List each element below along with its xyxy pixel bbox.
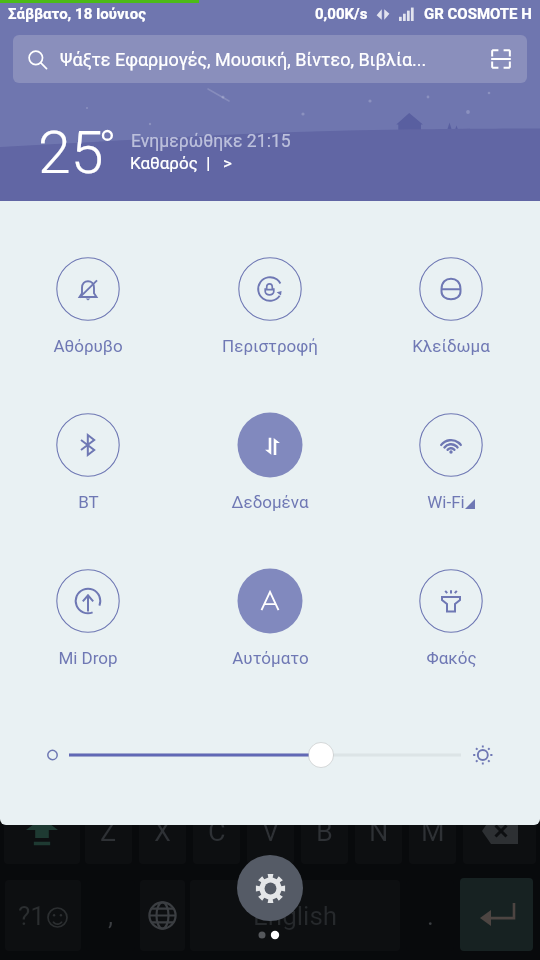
button[interactable]: Κλείδωμα bbox=[391, 252, 511, 356]
staticText: 25 bbox=[38, 118, 104, 187]
staticText: Δεδομένα bbox=[231, 492, 309, 512]
button[interactable]: Mi Drop bbox=[28, 564, 148, 668]
button[interactable]: Φακός bbox=[391, 564, 511, 668]
staticText: BT bbox=[78, 492, 99, 512]
staticText: Καθαρός | > bbox=[130, 153, 232, 173]
staticText: Περιστροφή bbox=[222, 336, 318, 356]
button[interactable] bbox=[463, 810, 536, 864]
button[interactable]: Αθόρυβο bbox=[28, 252, 148, 356]
staticText: 0,00K/s bbox=[315, 5, 368, 23]
button[interactable]: Δεδομένα bbox=[210, 408, 330, 512]
staticText: , bbox=[108, 901, 114, 931]
staticText: B bbox=[316, 816, 333, 848]
staticText: Αθόρυβο bbox=[53, 336, 123, 356]
button[interactable] bbox=[460, 878, 533, 951]
button[interactable]: V bbox=[247, 810, 294, 864]
button[interactable]: X bbox=[139, 810, 186, 864]
button[interactable]: C bbox=[193, 810, 240, 864]
button[interactable]: N bbox=[355, 810, 402, 864]
button[interactable]: Keyboard settings bbox=[237, 855, 303, 921]
button[interactable]: Περιστροφή bbox=[210, 252, 330, 356]
staticText: M bbox=[421, 816, 445, 848]
staticText: English bbox=[253, 901, 338, 931]
staticText: Ψάξτε Εφαρμογές, Μουσική, Βίντεο, Βιβλία… bbox=[60, 49, 427, 70]
button[interactable]: Brightness bbox=[0, 735, 540, 775]
button[interactable]: M bbox=[409, 810, 456, 864]
staticText: Wi-Fi bbox=[427, 492, 465, 512]
staticText: GR COSMOTE H bbox=[424, 5, 532, 23]
staticText: N bbox=[369, 816, 389, 848]
button[interactable]: BT bbox=[28, 408, 148, 512]
staticText: Κλείδωμα bbox=[412, 336, 490, 356]
button[interactable]: Z bbox=[85, 810, 132, 864]
staticText: Z bbox=[100, 816, 117, 848]
staticText: Φακός bbox=[426, 648, 477, 668]
staticText: Αυτόματο bbox=[232, 648, 309, 668]
button[interactable]: English bbox=[190, 880, 400, 951]
staticText: Ενημερώθηκε 21:15 bbox=[131, 131, 291, 152]
button[interactable]: Ψάξτε Εφαρμογές, Μουσική, Βίντεο, Βιβλία… bbox=[13, 35, 527, 83]
staticText: C bbox=[208, 816, 226, 848]
button[interactable]: B bbox=[301, 810, 348, 864]
staticText: V bbox=[262, 816, 280, 848]
button[interactable] bbox=[4, 810, 80, 864]
staticText: Mi Drop bbox=[58, 648, 118, 668]
staticText: Σάββατο, 18 Ιούνιος bbox=[8, 5, 146, 23]
staticText: . bbox=[427, 901, 434, 931]
button[interactable]: Scan code bbox=[488, 46, 514, 72]
button[interactable] bbox=[140, 880, 185, 951]
button[interactable]: Wi-Fi bbox=[391, 408, 511, 512]
button[interactable]: ?1 bbox=[5, 880, 81, 951]
staticText: X bbox=[154, 816, 171, 848]
button[interactable] bbox=[26, 110, 246, 182]
staticText: ?1 bbox=[18, 901, 45, 931]
button[interactable]: Αυτόματο bbox=[210, 564, 330, 668]
